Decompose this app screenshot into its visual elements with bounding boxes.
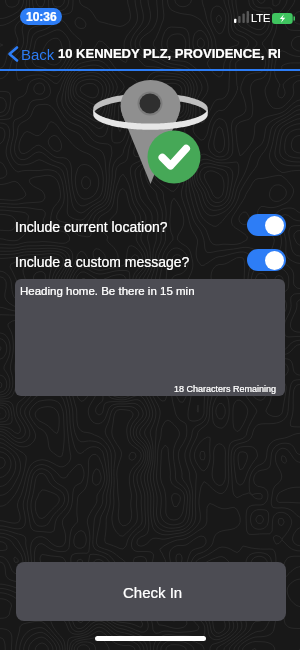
staticText: 18 Characters Remaining xyxy=(174,384,277,394)
staticText: Back xyxy=(21,46,55,63)
staticText: 10 KENNEDY PLZ, PROVIDENCE, RI xyxy=(58,46,281,61)
button[interactable]: Check In xyxy=(16,562,286,621)
staticText: Check In xyxy=(123,584,183,601)
button[interactable]: Back xyxy=(4,39,59,69)
staticText: Heading home. Be there in 15 min xyxy=(20,285,195,298)
staticText: LTE xyxy=(251,12,271,24)
staticText: Include a custom message? xyxy=(15,254,190,270)
staticText: 10:36 xyxy=(26,10,57,23)
button[interactable]: Include current location? xyxy=(247,214,286,236)
button[interactable]: Include a custom message? xyxy=(247,249,286,271)
staticText: Include current location? xyxy=(15,219,168,235)
button[interactable]: Heading home. Be there in 15 min xyxy=(15,279,285,396)
